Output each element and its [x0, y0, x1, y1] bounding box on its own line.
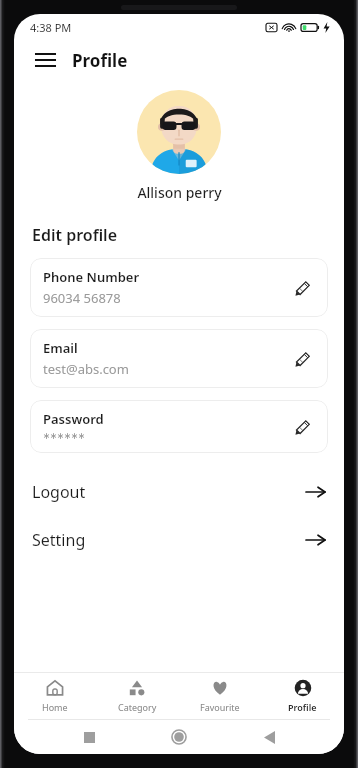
staticText: 4:38 PM: [30, 20, 72, 35]
button[interactable]: Profile photo: [137, 90, 221, 174]
button[interactable]: Logout: [14, 475, 344, 509]
staticText: Password: [43, 410, 104, 428]
button[interactable]: Favourite: [178, 673, 261, 719]
button[interactable]: Email: [30, 329, 328, 388]
staticText: test@abs.com: [43, 360, 129, 378]
button[interactable]: Menu: [28, 43, 62, 77]
button[interactable]: Home: [14, 673, 96, 719]
button[interactable]: Home: [164, 722, 194, 752]
staticText: Setting: [32, 529, 86, 551]
staticText: Logout: [32, 481, 86, 503]
button[interactable]: Setting: [14, 523, 344, 557]
staticText: Category: [118, 701, 157, 713]
staticText: Profile: [72, 49, 128, 72]
button[interactable]: Profile: [261, 673, 344, 719]
staticText: Phone Number: [43, 268, 140, 286]
staticText: Profile: [288, 701, 317, 713]
staticText: Favourite: [200, 701, 240, 713]
button[interactable]: Phone Number: [30, 258, 328, 317]
button[interactable]: Password: [30, 400, 328, 453]
staticText: Allison perry: [137, 183, 222, 202]
button[interactable]: Edit Email: [289, 346, 315, 372]
button[interactable]: Back: [254, 722, 284, 752]
staticText: Edit profile: [32, 224, 117, 246]
staticText: Home: [42, 701, 68, 713]
button[interactable]: Edit Password: [289, 414, 315, 440]
staticText: 96034 56878: [43, 289, 121, 307]
staticText: Email: [43, 339, 78, 357]
button[interactable]: Category: [96, 673, 178, 719]
button[interactable]: Edit Phone Number: [289, 275, 315, 301]
button[interactable]: Recent apps: [74, 722, 104, 752]
